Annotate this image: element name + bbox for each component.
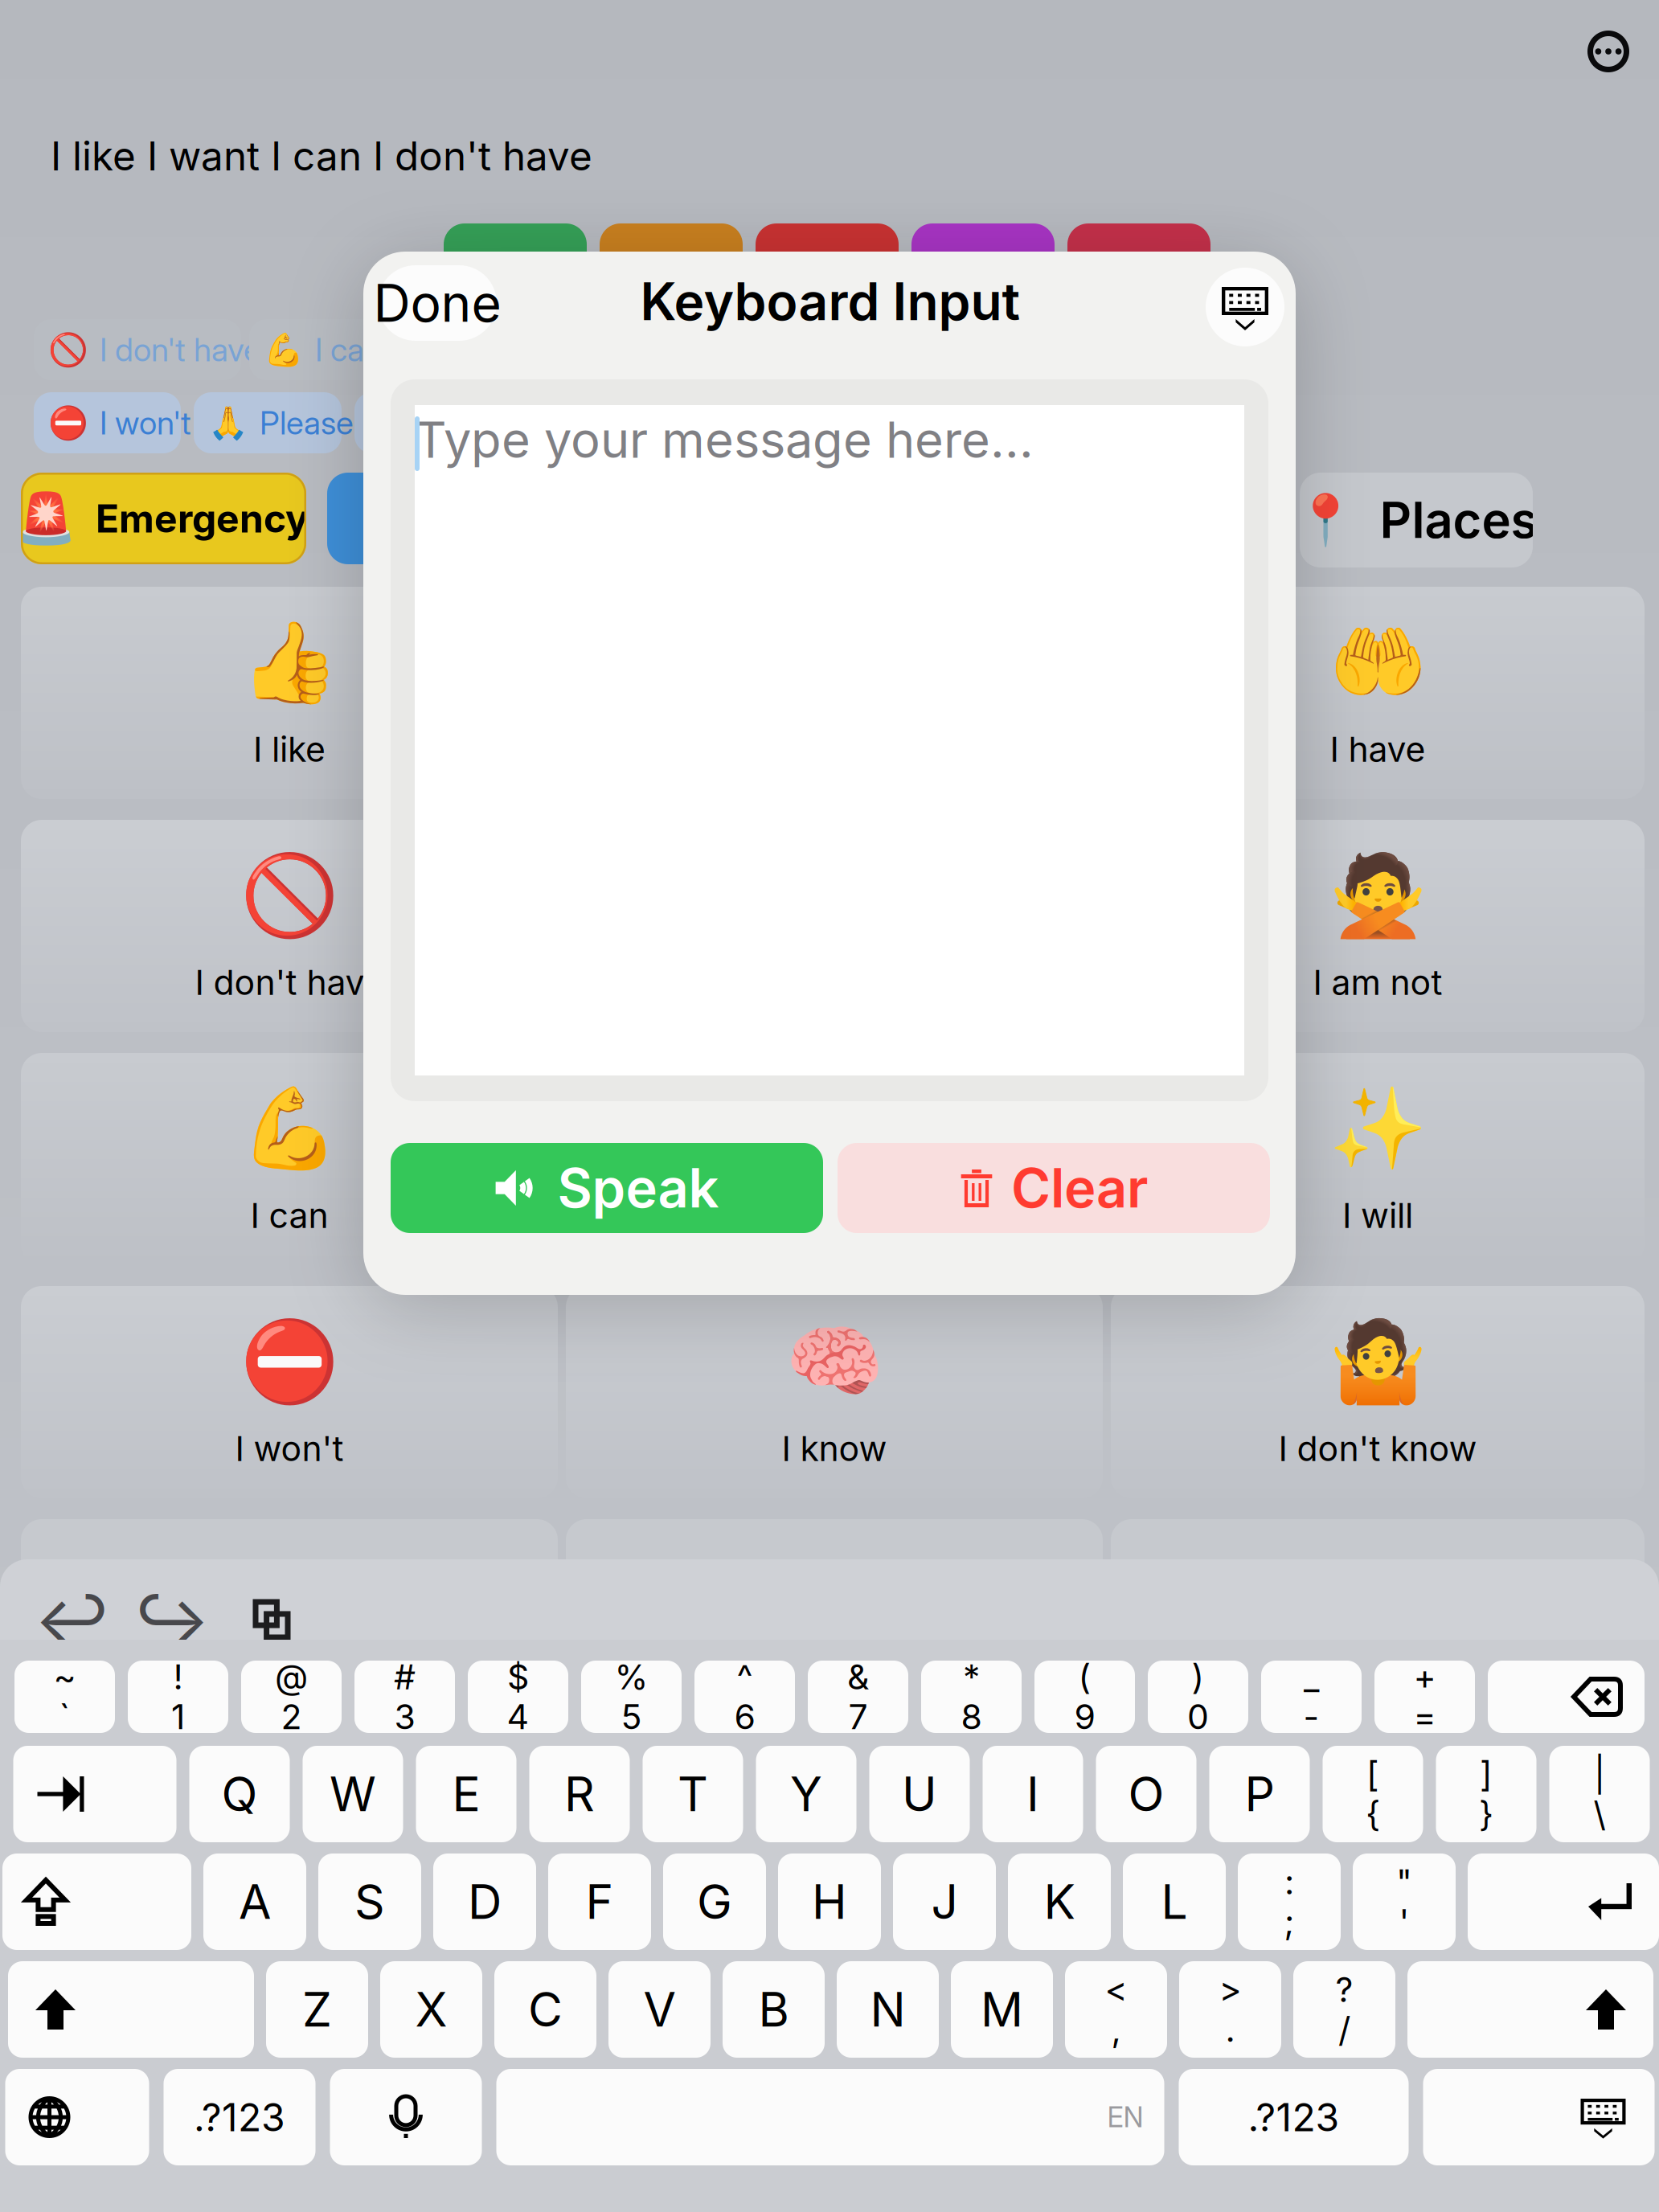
button[interactable]: J [893, 1854, 996, 1950]
button[interactable]: * [921, 1661, 1022, 1733]
staticText: | [1594, 1753, 1605, 1795]
button[interactable]: ^ [694, 1661, 795, 1733]
button[interactable]: Tab [13, 1746, 176, 1842]
staticText: 🚨 [15, 490, 76, 547]
button[interactable]: + [1374, 1661, 1475, 1733]
button[interactable]: ✨ [1111, 1053, 1645, 1265]
staticText: ⛔ [240, 1316, 339, 1408]
staticText: E [452, 1766, 480, 1823]
button[interactable]: Clear [838, 1143, 1270, 1233]
button[interactable]: Undo [42, 1589, 103, 1650]
staticText: 🤲 [1328, 616, 1427, 709]
staticText: I am not [1313, 962, 1442, 1003]
button[interactable]: 🤷 [1111, 1286, 1645, 1498]
button[interactable]: 🚨 [21, 473, 306, 564]
button[interactable]: Paste [241, 1589, 302, 1650]
button[interactable]: 💪 [249, 319, 410, 380]
button[interactable]: B [723, 1961, 825, 2058]
button[interactable]: N [837, 1961, 939, 2058]
button[interactable]: U [869, 1746, 970, 1842]
button[interactable]: Delete [1488, 1661, 1645, 1733]
button[interactable]: X [380, 1961, 482, 2058]
button[interactable]: Hide keyboard [1206, 268, 1284, 346]
button[interactable]: _ [1261, 1661, 1362, 1733]
staticText: ( [1078, 1656, 1091, 1698]
button[interactable]: E [416, 1746, 516, 1842]
button[interactable]: M [951, 1961, 1053, 2058]
button[interactable]: Return [1468, 1854, 1659, 1950]
button[interactable]: Hide keyboard [1423, 2069, 1655, 2165]
staticText: I don't know [1278, 1428, 1477, 1469]
button[interactable]: 👍 [21, 587, 558, 799]
button[interactable]: ! [128, 1661, 228, 1733]
button[interactable]: @ [241, 1661, 342, 1733]
button[interactable]: Shift [8, 1961, 254, 2058]
button[interactable]: ⛔ [34, 392, 181, 453]
button[interactable]: # [354, 1661, 455, 1733]
button[interactable]: F [548, 1854, 651, 1950]
button[interactable]: ) [1148, 1661, 1248, 1733]
button[interactable]: Z [266, 1961, 368, 2058]
button[interactable]: ~ [14, 1661, 115, 1733]
staticText: ? [1335, 1969, 1353, 2010]
button[interactable]: A [203, 1854, 306, 1950]
button[interactable]: | [1549, 1746, 1650, 1842]
button[interactable]: Speak [391, 1143, 823, 1233]
button[interactable]: % [581, 1661, 682, 1733]
staticText: 🧠 [785, 1316, 884, 1408]
button[interactable]: $ [468, 1661, 568, 1733]
button[interactable]: 🚫 [34, 319, 241, 380]
button[interactable]: G [663, 1854, 766, 1950]
button[interactable]: I [983, 1746, 1083, 1842]
button[interactable]: Redo [141, 1589, 203, 1650]
button[interactable]: 🙅 [1111, 820, 1645, 1032]
button[interactable]: D [433, 1854, 536, 1950]
button[interactable]: Y [756, 1746, 856, 1842]
button[interactable]: < [1065, 1961, 1167, 2058]
button[interactable]: 💪 [21, 1053, 558, 1265]
button[interactable]: " [1353, 1854, 1456, 1950]
button[interactable]: ❤️ [566, 1053, 1103, 1265]
staticText: G [697, 1873, 732, 1930]
staticText: $ [507, 1656, 529, 1698]
staticText: EN [1107, 2100, 1143, 2134]
button[interactable]: ? [1293, 1961, 1395, 2058]
staticText: I won't [235, 1428, 344, 1469]
staticText: C [528, 1981, 563, 2038]
button[interactable]: P [1209, 1746, 1310, 1842]
button[interactable]: Q [189, 1746, 290, 1842]
button[interactable]: [ [1323, 1746, 1423, 1842]
button[interactable]: R [529, 1746, 630, 1842]
button[interactable]: More options [1575, 18, 1641, 84]
button[interactable]: K [1008, 1854, 1111, 1950]
button[interactable]: .?123 [164, 2069, 315, 2165]
button[interactable]: .?123 [1179, 2069, 1409, 2165]
button[interactable]: H [778, 1854, 881, 1950]
button[interactable]: & [808, 1661, 908, 1733]
button[interactable]: W [303, 1746, 403, 1842]
button[interactable]: ⛔ [21, 1286, 558, 1498]
button[interactable]: Caps lock [2, 1854, 191, 1950]
button[interactable]: Dictate [330, 2069, 482, 2165]
button[interactable]: S [318, 1854, 421, 1950]
button[interactable]: Done [378, 265, 497, 341]
button[interactable]: V [608, 1961, 711, 2058]
button[interactable]: 🧠 [566, 1286, 1103, 1498]
button[interactable]: ] [1436, 1746, 1536, 1842]
staticText: I love [792, 1195, 877, 1236]
button[interactable]: > [1179, 1961, 1281, 2058]
button[interactable]: 🚫 [21, 820, 558, 1032]
button[interactable]: : [1238, 1854, 1341, 1950]
button[interactable]: O [1096, 1746, 1196, 1842]
button[interactable]: L [1123, 1854, 1226, 1950]
button[interactable]: 📍 [1300, 473, 1533, 567]
button[interactable]: C [494, 1961, 596, 2058]
button[interactable]: 🤲 [1111, 587, 1645, 799]
button[interactable]: ( [1034, 1661, 1135, 1733]
button[interactable]: Next keyboard [5, 2069, 149, 2165]
button[interactable]: 🙏 [194, 392, 342, 453]
button[interactable]: T [643, 1746, 743, 1842]
button[interactable]: Shift [1407, 1961, 1653, 2058]
